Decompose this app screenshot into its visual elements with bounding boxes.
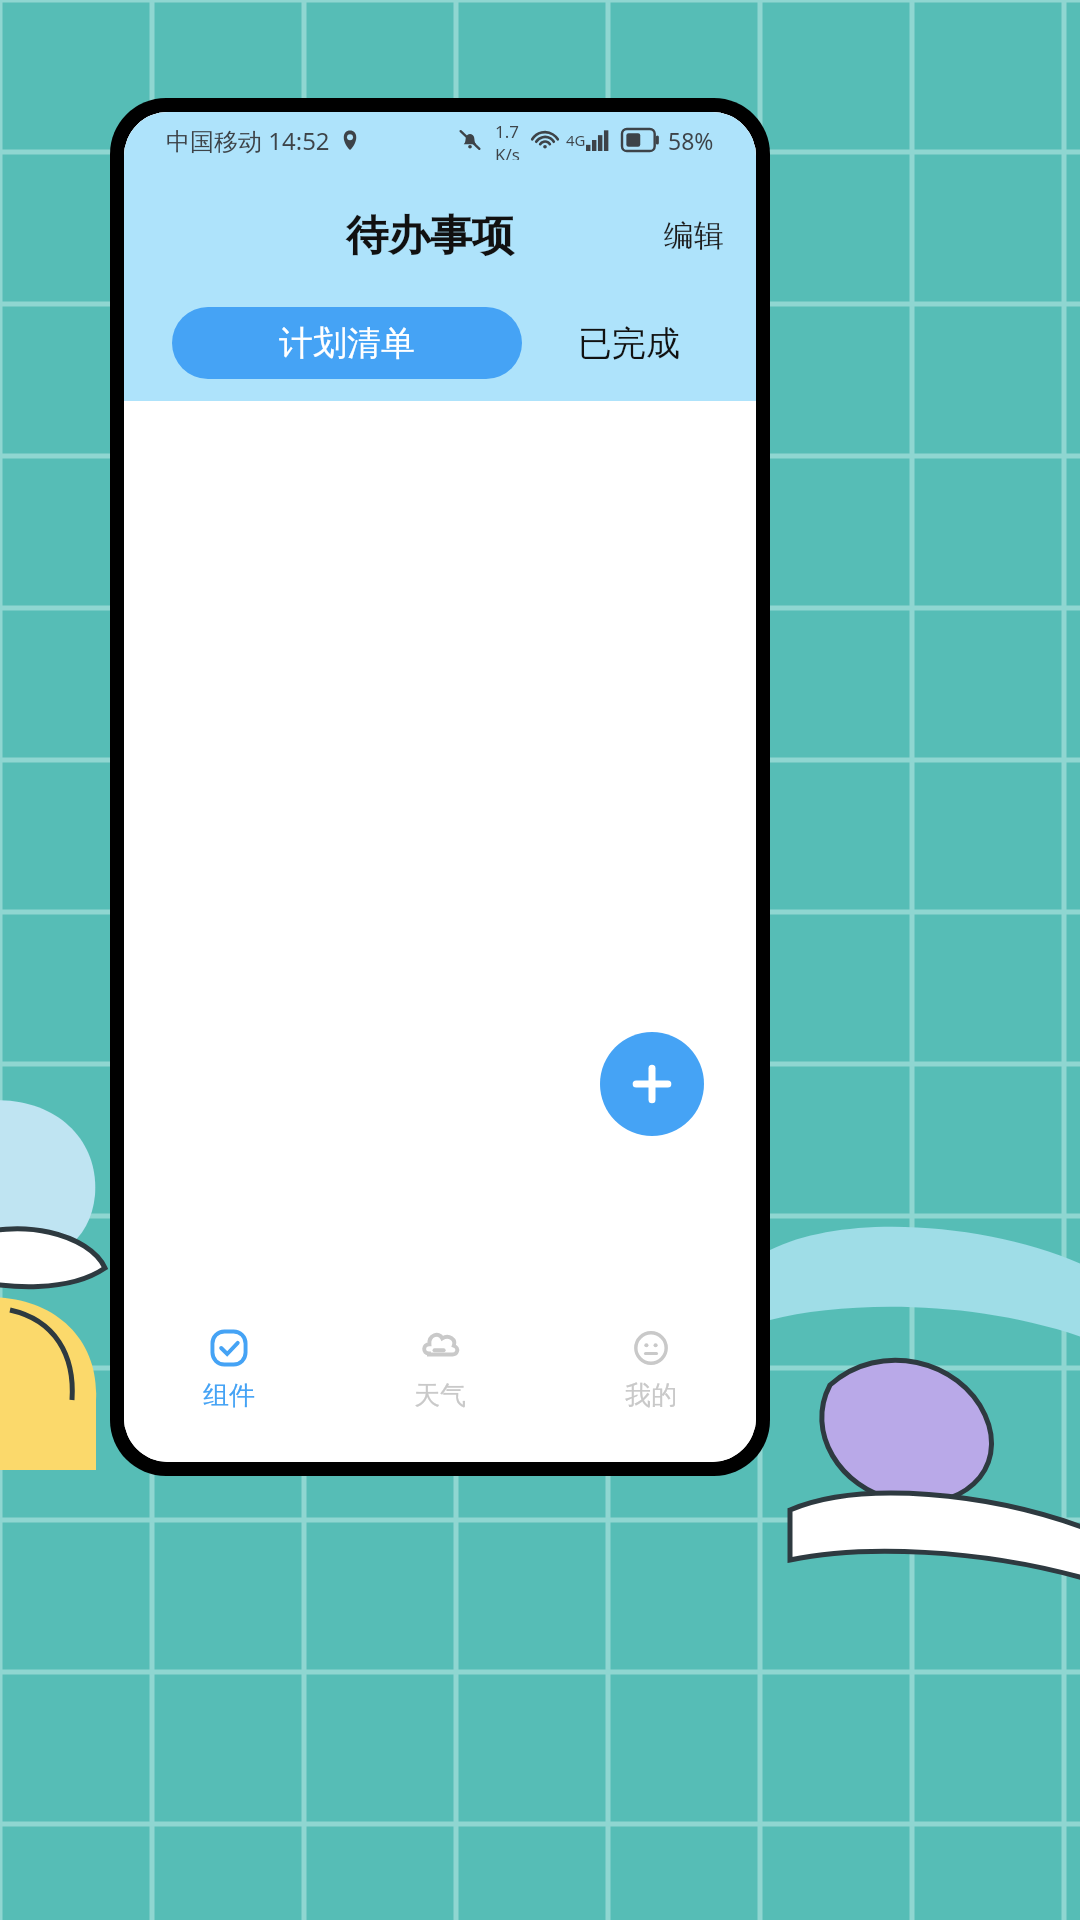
button[interactable]: 组件 bbox=[124, 1308, 334, 1428]
staticText: 4G bbox=[566, 130, 586, 150]
staticText: 计划清单 bbox=[279, 322, 415, 365]
staticText: 编辑 bbox=[664, 217, 724, 255]
staticText: 58% bbox=[668, 125, 714, 156]
staticText: K/s bbox=[495, 143, 520, 160]
staticText: 我的 bbox=[625, 1379, 677, 1412]
staticText: 天气 bbox=[414, 1379, 466, 1412]
staticText: 已完成 bbox=[578, 322, 680, 365]
staticText: 待办事项 bbox=[346, 210, 514, 263]
staticText: 1.7 bbox=[495, 120, 520, 143]
button[interactable]: 我的 bbox=[545, 1308, 756, 1428]
staticText: 中国移动 14:52 bbox=[166, 124, 330, 157]
button[interactable]: 天气 bbox=[334, 1308, 545, 1428]
button[interactable]: 已完成 bbox=[522, 307, 736, 379]
button[interactable]: 编辑 bbox=[654, 211, 734, 261]
button[interactable]: 添加 bbox=[600, 1032, 704, 1136]
button[interactable]: 计划清单 bbox=[172, 307, 522, 379]
staticText: 组件 bbox=[203, 1379, 255, 1412]
